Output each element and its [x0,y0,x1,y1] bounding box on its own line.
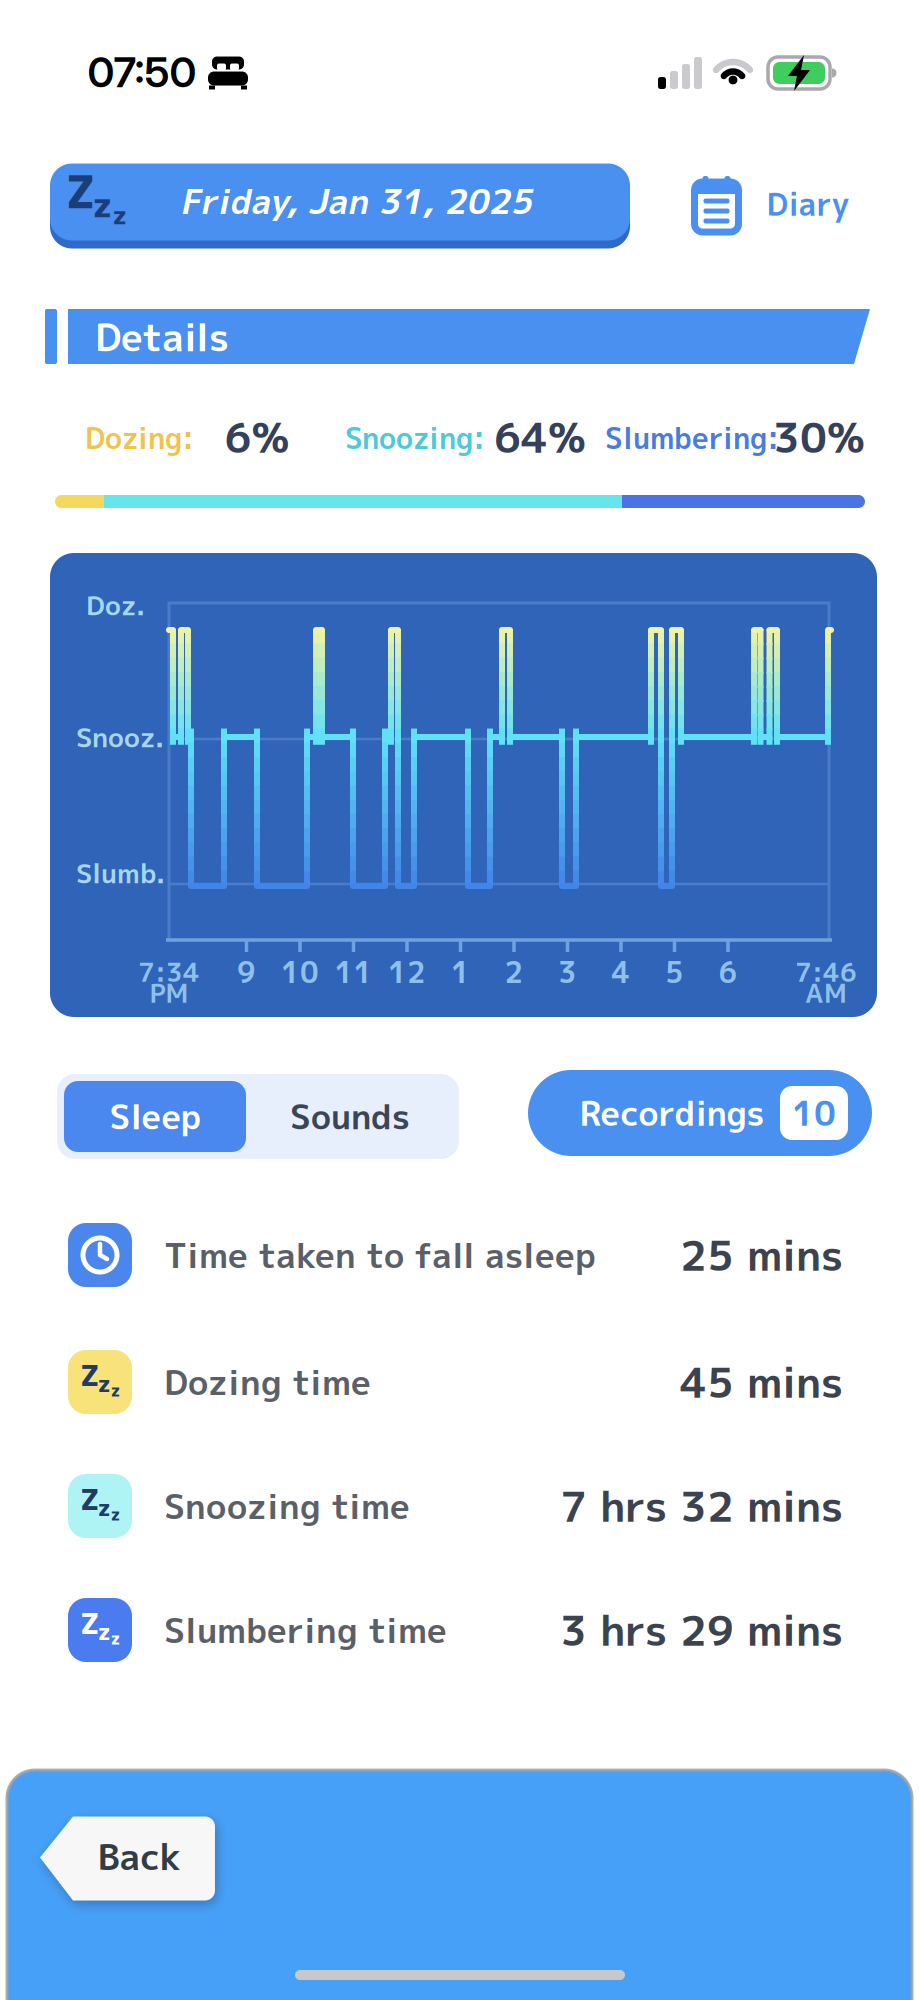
staticText: 25 mins [680,1226,843,1284]
staticText: 7:34 [138,954,200,990]
staticText: 1 [451,952,470,992]
button[interactable]: Sounds [260,1081,440,1152]
staticText: 5 [665,952,684,992]
staticText: z [112,198,126,232]
staticText: Slumb. [76,854,165,892]
staticText: Z [80,1603,99,1643]
staticText: 11 [334,952,372,992]
staticText: 10 [792,1089,836,1137]
staticText: 3 hrs 29 mins [560,1601,843,1659]
staticText: Slumbering: [605,418,779,458]
staticText: Diary [766,182,849,226]
staticText: 2 [504,952,523,992]
staticText: z [111,1627,120,1650]
staticText: z [92,181,112,228]
staticText: 30% [773,408,865,466]
staticText: 64% [494,408,586,466]
staticText: Back [97,1831,181,1882]
button[interactable]: Sleep [64,1081,246,1152]
staticText: 12 [388,952,426,992]
button[interactable]: Diary [690,175,849,233]
staticText: Recordings [579,1089,764,1137]
staticText: 3 [558,952,577,992]
button[interactable]: Back [40,1814,215,1900]
staticText: Snoozing time [164,1482,410,1530]
staticText: Snooz. [76,718,164,756]
staticText: Sleep [109,1093,200,1140]
staticText: Time taken to fall asleep [164,1231,596,1279]
staticText: Z [80,1479,99,1519]
staticText: 10 [281,952,319,992]
staticText: Sounds [290,1093,410,1140]
staticText: Details [95,310,229,363]
button[interactable]: Friday, Jan 31, 2025 [48,160,632,248]
staticText: Dozing: [85,418,194,458]
staticText: PM [149,975,188,1011]
staticText: Z [80,1355,99,1395]
staticText: Snoozing: [345,418,485,458]
button[interactable]: Recordings [528,1070,872,1156]
staticText: 7 hrs 32 mins [560,1477,843,1535]
staticText: 45 mins [680,1353,843,1411]
staticText: 6% [224,408,289,466]
staticText: Friday, Jan 31, 2025 [180,177,532,225]
staticText: 6 [718,952,737,992]
staticText: z [111,1379,120,1402]
staticText: 7:46 [795,954,857,990]
staticText: z [98,1492,111,1523]
staticText: 4 [611,952,630,992]
staticText: z [111,1503,120,1526]
staticText: Slumbering time [164,1606,447,1654]
staticText: z [98,1616,111,1647]
staticText: 07:50 [87,47,196,97]
staticText: Doz. [86,586,145,624]
staticText: AM [805,975,847,1011]
staticText: Dozing time [164,1358,371,1406]
staticText: z [98,1368,111,1399]
staticText: Z [66,161,95,222]
staticText: 9 [237,952,256,992]
